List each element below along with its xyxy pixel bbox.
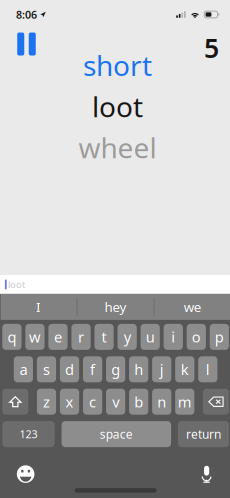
staticText: loot <box>8 278 25 291</box>
staticText: space <box>100 426 133 442</box>
button[interactable]: h <box>129 356 148 382</box>
staticText: u <box>146 327 155 347</box>
button[interactable]: 123 <box>2 421 55 447</box>
button[interactable]: q <box>2 324 21 350</box>
staticText: e <box>54 327 62 347</box>
staticText: wheel <box>78 129 156 166</box>
button[interactable]: Delete <box>203 389 229 415</box>
staticText: r <box>78 327 84 347</box>
staticText: a <box>19 360 27 379</box>
staticText: 5 <box>204 30 219 65</box>
button[interactable]: return <box>178 421 229 447</box>
button[interactable]: p <box>210 324 229 350</box>
staticText: h <box>134 360 143 379</box>
button[interactable]: a <box>14 356 33 382</box>
staticText: loot <box>92 88 143 125</box>
button[interactable]: v <box>106 389 125 415</box>
button[interactable]: Dictate <box>189 462 225 486</box>
staticText: I <box>36 298 41 316</box>
staticText: b <box>134 392 143 411</box>
staticText: o <box>192 327 201 347</box>
button[interactable]: u <box>141 324 160 350</box>
button[interactable]: we <box>155 294 230 320</box>
button[interactable]: k <box>175 356 194 382</box>
staticText: g <box>111 360 120 379</box>
staticText: i <box>171 327 175 347</box>
button[interactable]: n <box>152 389 171 415</box>
button[interactable]: i <box>164 324 183 350</box>
staticText: hey <box>105 298 127 316</box>
staticText: short <box>83 46 152 84</box>
button[interactable]: t <box>94 324 114 350</box>
staticText: x <box>65 392 73 411</box>
button[interactable]: x <box>60 389 79 415</box>
staticText: q <box>7 327 16 347</box>
staticText: l <box>206 360 210 379</box>
staticText: f <box>90 360 95 379</box>
staticText: w <box>29 327 41 347</box>
button[interactable]: Emoji keyboard <box>8 462 44 486</box>
button[interactable]: s <box>37 356 56 382</box>
button[interactable]: j <box>152 356 171 382</box>
staticText: return <box>186 426 221 442</box>
staticText: c <box>89 392 96 411</box>
staticText: z <box>43 392 50 411</box>
staticText: n <box>157 392 166 411</box>
button[interactable]: I <box>1 294 77 320</box>
button[interactable]: g <box>106 356 125 382</box>
button[interactable]: Shift <box>2 389 28 415</box>
button[interactable]: f <box>83 356 102 382</box>
button[interactable]: w <box>25 324 45 350</box>
staticText: t <box>102 327 107 347</box>
staticText: y <box>124 327 131 347</box>
staticText: 123 <box>19 427 37 441</box>
staticText: we <box>184 298 202 316</box>
button[interactable]: space <box>62 421 171 447</box>
button[interactable]: c <box>83 389 102 415</box>
button[interactable]: z <box>37 389 56 415</box>
staticText: 8:06 <box>16 7 37 22</box>
button[interactable]: d <box>60 356 79 382</box>
button[interactable]: y <box>118 324 137 350</box>
button[interactable]: o <box>187 324 206 350</box>
button[interactable]: Pause <box>11 30 41 58</box>
button[interactable]: r <box>71 324 91 350</box>
button[interactable]: hey <box>78 294 154 320</box>
button[interactable]: e <box>48 324 68 350</box>
button[interactable]: l <box>198 356 217 382</box>
staticText: d <box>65 360 74 379</box>
staticText: m <box>178 392 192 411</box>
button[interactable]: b <box>129 389 148 415</box>
staticText: j <box>160 360 164 379</box>
button[interactable]: m <box>175 389 194 415</box>
staticText: p <box>215 327 224 347</box>
staticText: v <box>112 392 119 411</box>
staticText: s <box>43 360 50 379</box>
staticText: k <box>181 360 189 379</box>
